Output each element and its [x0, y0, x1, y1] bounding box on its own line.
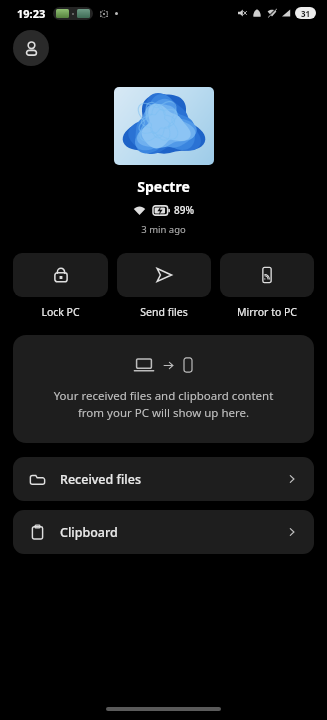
button[interactable]: Clipboard: [13, 510, 314, 554]
staticText: 19:23: [17, 6, 46, 21]
button[interactable]: PC wallpaper: [114, 87, 214, 165]
staticText: Clipboard: [60, 524, 118, 541]
staticText: 31: [301, 8, 311, 19]
button[interactable]: Account: [13, 30, 49, 66]
button[interactable]: Mirror to PC: [220, 253, 314, 319]
staticText: 89%: [174, 203, 194, 217]
button[interactable]: Lock PC: [13, 253, 108, 319]
staticText: Lock PC: [41, 305, 80, 319]
staticText: Spectre: [0, 177, 327, 196]
staticText: Received files: [60, 471, 141, 488]
button[interactable]: Send files: [117, 253, 211, 319]
staticText: Mirror to PC: [237, 305, 297, 319]
staticText: 3 min ago: [0, 223, 327, 236]
button[interactable]: Your received files and clipboard conten…: [13, 335, 314, 443]
staticText: Send files: [140, 305, 188, 319]
staticText: Your received files and clipboard conten…: [29, 388, 298, 421]
button[interactable]: Received files: [13, 457, 314, 501]
